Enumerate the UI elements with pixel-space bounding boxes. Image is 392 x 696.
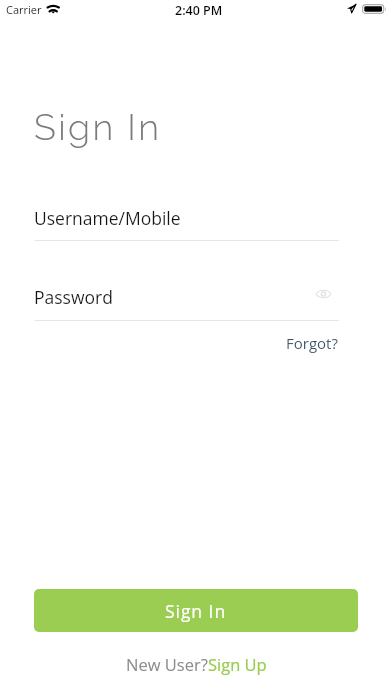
button[interactable]: Forgot? <box>278 328 346 358</box>
staticText: Password <box>34 285 113 309</box>
button[interactable]: Password <box>34 280 304 320</box>
staticText: Sign In <box>165 599 227 623</box>
staticText: Forgot? <box>286 333 338 353</box>
button[interactable]: Sign Up <box>208 653 267 675</box>
staticText: Carrier <box>6 2 42 17</box>
button[interactable]: Username/Mobile <box>34 200 338 241</box>
staticText: 2:40 PM <box>175 2 223 19</box>
button[interactable]: Sign In <box>34 589 358 632</box>
staticText: Username/Mobile <box>34 206 181 230</box>
staticText: Sign In <box>34 106 162 148</box>
staticText: Sign Up <box>208 653 267 675</box>
button[interactable]: Show password <box>310 281 336 307</box>
staticText: New User? <box>126 653 208 675</box>
